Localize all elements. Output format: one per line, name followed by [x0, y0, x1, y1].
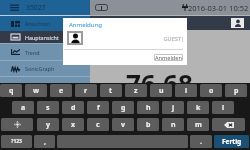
button[interactable]: ?123 — [1, 135, 32, 148]
button[interactable]: t — [100, 84, 122, 97]
button[interactable]: a — [12, 101, 34, 114]
staticText: i — [185, 86, 188, 96]
button[interactable]: m — [187, 118, 209, 131]
button[interactable]: p — [225, 84, 247, 97]
button[interactable]: Backspace — [212, 118, 245, 131]
staticText: ?123 — [11, 138, 22, 145]
button[interactable]: GUEST| — [84, 35, 184, 43]
staticText: r — [84, 86, 88, 96]
staticText: u — [159, 86, 164, 96]
staticText: s — [46, 103, 50, 113]
staticText: z — [134, 86, 138, 96]
button[interactable]: e — [50, 84, 72, 97]
other: Shift — [14, 121, 21, 128]
button[interactable]: x — [62, 118, 84, 131]
staticText: Fertig — [222, 137, 242, 146]
staticText: m — [195, 120, 202, 130]
button[interactable]: Account — [231, 18, 244, 28]
staticText: a — [21, 103, 26, 113]
button[interactable]: h — [137, 101, 159, 114]
button[interactable]: w — [25, 84, 47, 97]
staticText: t — [109, 86, 113, 96]
staticText: o — [209, 86, 214, 96]
staticText: l — [222, 103, 225, 113]
button[interactable]: f — [87, 101, 109, 114]
button[interactable]: l — [212, 101, 234, 114]
button[interactable]: q — [0, 84, 22, 97]
staticText: n — [171, 120, 176, 130]
button[interactable]: SonicGraph — [0, 61, 90, 76]
button[interactable]: b — [137, 118, 159, 131]
button[interactable]: Hauptansicht — [0, 31, 90, 43]
other: Menu — [10, 4, 19, 11]
staticText: q — [9, 86, 14, 96]
staticText: 35027 — [26, 3, 46, 12]
button[interactable]: Anmelden — [154, 54, 183, 61]
staticText: k — [196, 103, 201, 113]
staticText: g — [121, 103, 126, 113]
button[interactable]: Ansichten — [0, 16, 90, 31]
staticText: j — [172, 103, 175, 113]
button[interactable]: z — [125, 84, 147, 97]
staticText: Anmeldung — [69, 21, 102, 29]
button[interactable]: k — [187, 101, 209, 114]
button[interactable]: r — [75, 84, 97, 97]
staticText: x — [71, 120, 76, 130]
button[interactable]: d — [62, 101, 84, 114]
button[interactable]: g — [112, 101, 134, 114]
button[interactable]: u — [150, 84, 172, 97]
button[interactable]: Fertig — [214, 135, 249, 148]
staticText: p — [234, 86, 239, 96]
staticText: 76.68 — [126, 66, 193, 101]
staticText: Ansichten — [25, 20, 50, 27]
button[interactable]: o — [200, 84, 222, 97]
staticText: v — [121, 120, 125, 130]
staticText: e — [59, 86, 64, 96]
staticText: d — [71, 103, 76, 113]
staticText: y — [46, 120, 50, 130]
staticText: w — [33, 86, 39, 96]
button[interactable]: , — [34, 135, 55, 148]
button[interactable]: i — [175, 84, 197, 97]
button[interactable]: Trend — [0, 44, 90, 60]
staticText: . — [200, 137, 202, 147]
staticText: Anmelden — [155, 54, 182, 61]
other: Backspace — [224, 122, 234, 128]
staticText: , — [44, 137, 46, 147]
button[interactable]: s — [37, 101, 59, 114]
button[interactable]: n — [162, 118, 184, 131]
staticText: Trend — [25, 49, 40, 56]
button[interactable]: . — [190, 135, 212, 148]
staticText: c — [96, 120, 100, 130]
staticText: b — [146, 120, 151, 130]
staticText: Hauptansicht — [25, 34, 59, 41]
button[interactable]: v — [112, 118, 134, 131]
staticText: h — [146, 103, 151, 113]
button[interactable]: y — [37, 118, 59, 131]
staticText: SonicGraph — [25, 65, 55, 72]
button[interactable]: Menu — [0, 0, 90, 15]
button[interactable]: Windows — [95, 4, 108, 11]
button[interactable]: Shift — [1, 118, 33, 131]
staticText: f — [97, 103, 100, 113]
staticText: 2016-03-01 10:52 — [188, 3, 249, 13]
button[interactable]: c — [87, 118, 109, 131]
button[interactable]: j — [162, 101, 184, 114]
